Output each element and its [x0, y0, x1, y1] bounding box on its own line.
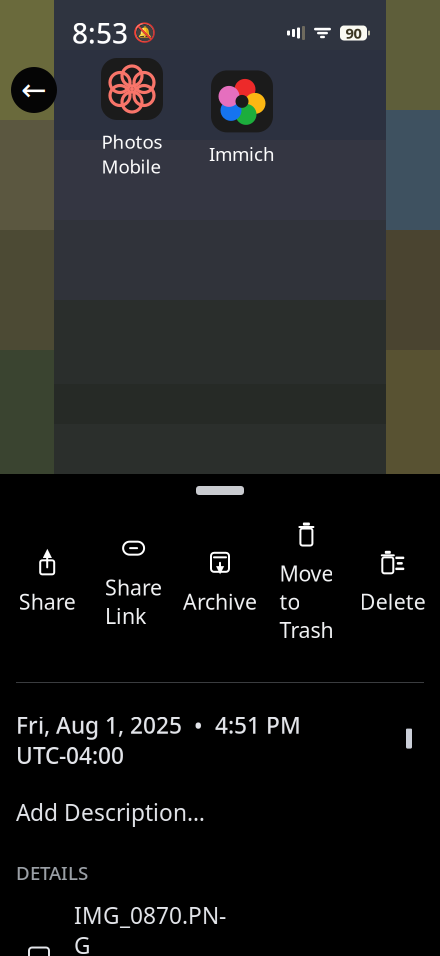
staticText: Add Description…	[16, 797, 205, 827]
staticText: ←	[21, 73, 47, 107]
button[interactable]: Immich	[209, 70, 275, 166]
button[interactable]: ▲	[4, 545, 90, 620]
staticText: Immich	[209, 141, 275, 166]
button[interactable]: Edit date	[394, 725, 424, 755]
staticText: ▼	[216, 563, 224, 575]
staticText: Move to Trash	[279, 559, 333, 644]
staticText: Photos Mobile	[101, 129, 162, 179]
staticText: Delete	[360, 587, 426, 616]
button[interactable]: Back	[11, 67, 57, 113]
button[interactable]: ▲▲	[0, 900, 440, 956]
staticText: IMG_0870.PNG	[74, 900, 226, 956]
button[interactable]: ▼	[177, 545, 263, 620]
button[interactable]: Fri, Aug 1, 2025 • 4:51 PM UTC-04:00	[16, 710, 301, 770]
button[interactable]: Move to Trash	[263, 517, 350, 648]
staticText: 🔕	[133, 22, 156, 44]
button[interactable]: Photos Mobile	[101, 58, 163, 179]
button[interactable]: Share Link	[90, 531, 177, 634]
staticText: DETAILS	[16, 860, 88, 885]
staticText: Fri, Aug 1, 2025 • 4:51 PM UTC-04:00	[16, 710, 301, 770]
staticText: 90	[345, 23, 361, 43]
staticText: Archive	[183, 587, 257, 616]
staticText: Share	[19, 587, 76, 616]
staticText: 8:53	[72, 14, 128, 52]
staticText: ▲	[43, 545, 52, 559]
button[interactable]: Delete	[350, 545, 436, 620]
staticText: Share Link	[105, 573, 162, 630]
